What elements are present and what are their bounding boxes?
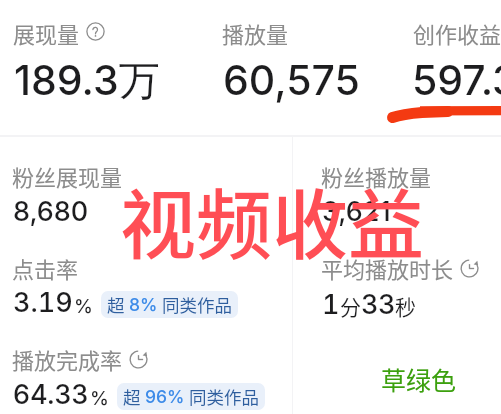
staticText: 8,680 xyxy=(13,195,89,228)
staticText: 粉丝播放量 xyxy=(321,160,432,192)
other: Duration info xyxy=(129,350,148,369)
staticText: 同类作品 xyxy=(185,384,259,409)
staticText: 60,575 xyxy=(223,55,360,105)
staticText: 播放量 xyxy=(222,17,289,49)
staticText: 597.3 xyxy=(412,55,501,105)
staticText: 超 xyxy=(107,292,129,317)
staticText: % xyxy=(74,295,93,318)
staticText: 96% xyxy=(145,386,185,407)
staticText: % xyxy=(90,387,109,410)
button[interactable]: 超 xyxy=(117,383,265,410)
staticText: 创作收益( xyxy=(413,17,501,49)
other: Duration info xyxy=(460,259,479,278)
staticText: 视频收益 xyxy=(120,165,424,275)
staticText: 点击率 xyxy=(12,252,79,284)
staticText: 播放完成率 xyxy=(12,343,123,375)
staticText: 同类作品 xyxy=(158,292,232,317)
staticText: 189.3万 xyxy=(14,55,160,107)
staticText: 3.19 xyxy=(13,286,73,319)
staticText: 展现量 xyxy=(13,17,80,49)
button[interactable]: 超 xyxy=(101,291,238,318)
staticText: 64.33 xyxy=(13,378,89,411)
staticText: 平均播放时长 xyxy=(321,252,454,284)
staticText: 秒 xyxy=(395,291,416,321)
other: Help xyxy=(86,22,105,41)
staticText: 分 xyxy=(340,291,361,321)
staticText: 33 xyxy=(361,288,395,321)
staticText: 超 xyxy=(123,384,145,409)
staticText: 草绿色 xyxy=(381,361,457,397)
staticText: 1 xyxy=(322,288,340,321)
staticText: 8% xyxy=(129,294,158,315)
staticText: 3,621 xyxy=(322,195,391,228)
staticText: 粉丝展现量 xyxy=(12,160,123,192)
